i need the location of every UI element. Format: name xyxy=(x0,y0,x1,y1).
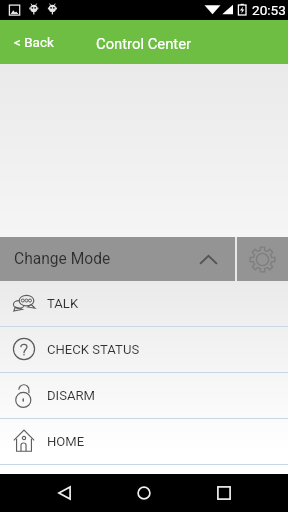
button[interactable]: < Back xyxy=(0,20,68,64)
button[interactable]: HOME xyxy=(0,419,288,464)
staticText: < Back xyxy=(14,34,54,50)
button[interactable]: Recent apps xyxy=(184,474,264,512)
button[interactable]: Home xyxy=(104,474,184,512)
button[interactable]: DISARM xyxy=(0,373,288,418)
staticText: HOME xyxy=(47,434,85,449)
button[interactable]: Back xyxy=(24,474,104,512)
staticText: TALK xyxy=(47,296,79,311)
button[interactable]: Change Mode xyxy=(0,237,235,281)
staticText: 20:53 xyxy=(252,2,286,18)
button[interactable]: CHECK STATUS xyxy=(0,327,288,372)
staticText: DISARM xyxy=(47,388,95,403)
staticText: Control Center xyxy=(96,35,192,52)
staticText: CHECK STATUS xyxy=(47,342,140,357)
staticText: Change Mode xyxy=(14,250,111,268)
button[interactable]: TALK xyxy=(0,281,288,326)
button[interactable]: Settings xyxy=(237,237,288,281)
